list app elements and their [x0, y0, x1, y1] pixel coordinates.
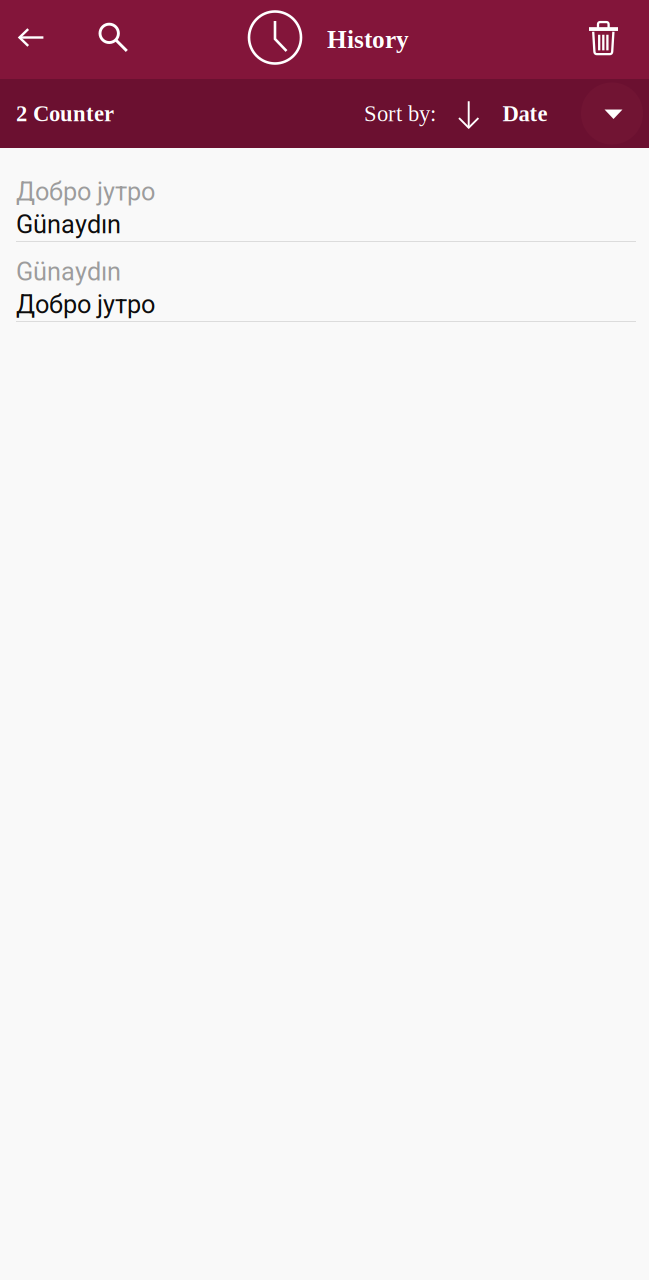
button[interactable]: Günaydın — [0, 242, 649, 322]
staticText: Günaydın — [16, 257, 121, 287]
staticText: 2 Counter — [16, 101, 114, 126]
button[interactable]: Delete history — [561, 0, 649, 79]
button[interactable]: Back — [0, 0, 61, 79]
staticText: Date — [502, 101, 547, 126]
button[interactable]: Sort direction — [436, 79, 502, 148]
staticText: Günaydın — [16, 210, 121, 239]
staticText: Добро јутро — [16, 177, 155, 207]
staticText: Добро јутро — [16, 290, 155, 319]
button[interactable]: Choose sort field — [575, 79, 649, 148]
staticText: History — [327, 25, 409, 54]
button[interactable]: Добро јутро — [0, 162, 649, 242]
staticText: Sort by: — [364, 101, 436, 126]
button[interactable]: Search — [61, 0, 158, 79]
